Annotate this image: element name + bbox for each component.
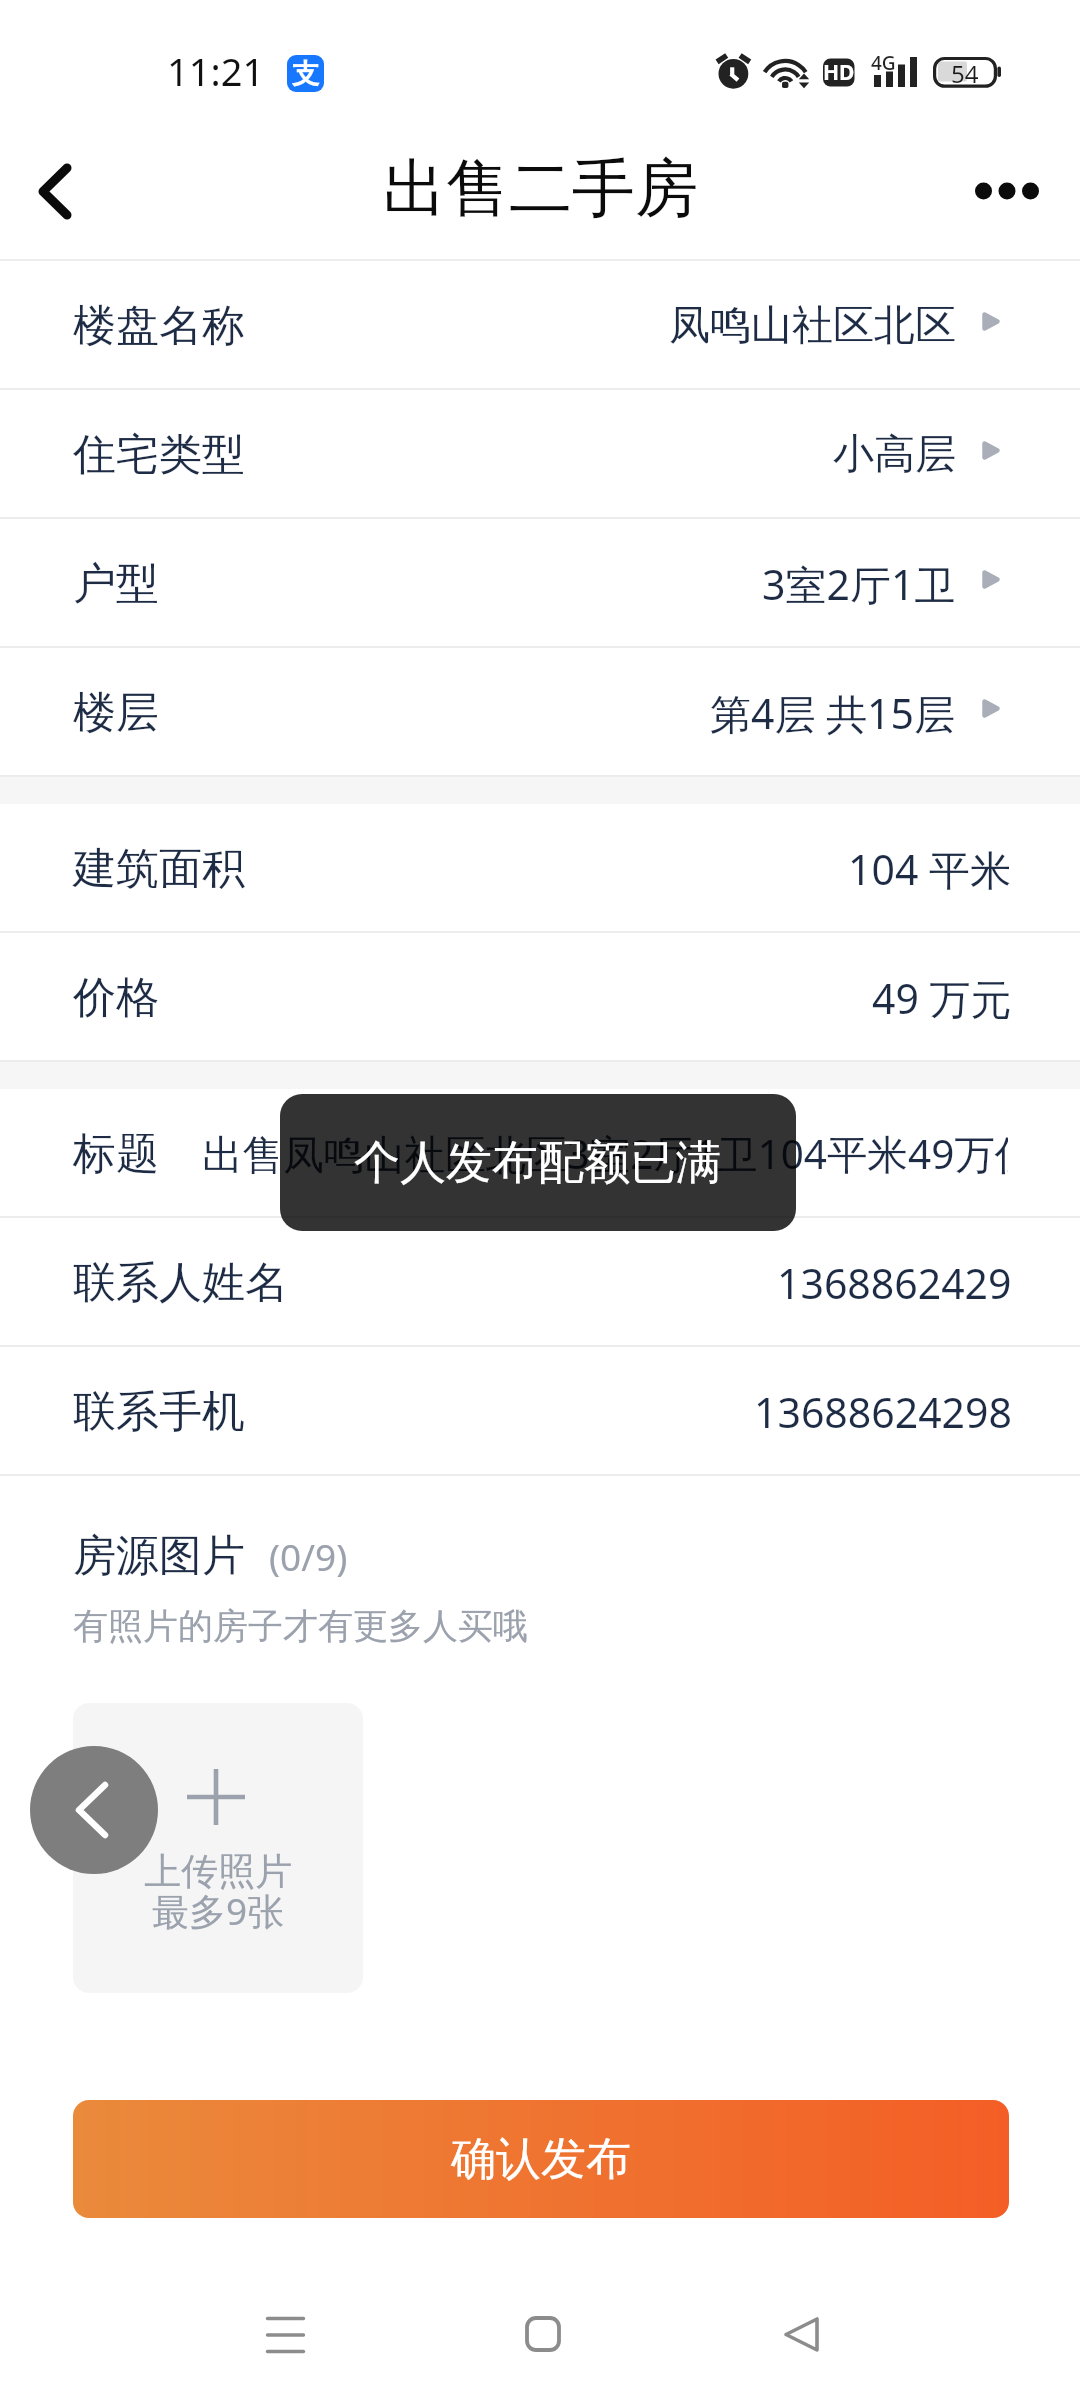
- button[interactable]: 楼盘名称: [0, 261, 1080, 390]
- staticText: 4G: [871, 50, 896, 76]
- staticText: 房源图片: [73, 1529, 245, 1583]
- button[interactable]: 价格: [0, 933, 1080, 1062]
- staticText: 出售二手房: [383, 149, 698, 228]
- button[interactable]: More options: [952, 131, 1062, 251]
- staticText: 49 万元: [872, 970, 1012, 1026]
- staticText: 户型: [73, 557, 159, 611]
- staticText: 建筑面积: [73, 842, 245, 896]
- staticText: 住宅类型: [73, 428, 245, 482]
- staticText: 确认发布: [451, 2131, 631, 2188]
- button[interactable]: 建筑面积: [0, 804, 1080, 933]
- button[interactable]: Back: [30, 1746, 158, 1874]
- button[interactable]: 户型: [0, 519, 1080, 648]
- staticText: 支: [292, 57, 319, 91]
- staticText: (0/9): [269, 1531, 348, 1581]
- staticText: 有照片的房子才有更多人买哦: [73, 1604, 528, 1648]
- staticText: 13688624298: [754, 1384, 1012, 1440]
- staticText: 3室2厅1卫: [762, 556, 956, 612]
- button[interactable]: Back: [751, 2284, 851, 2384]
- button[interactable]: 上传照片: [73, 1703, 363, 1993]
- staticText: 楼盘名称: [73, 299, 245, 353]
- staticText: 楼层: [73, 686, 159, 740]
- button[interactable]: Back: [0, 131, 110, 251]
- staticText: 个人发布配额已满: [354, 1134, 722, 1192]
- button[interactable]: Home: [493, 2284, 593, 2384]
- button[interactable]: 楼层: [0, 648, 1080, 777]
- button[interactable]: Recents: [235, 2285, 335, 2385]
- button[interactable]: 住宅类型: [0, 390, 1080, 519]
- staticText: 联系手机: [73, 1385, 245, 1439]
- staticText: 上传照片: [144, 1848, 292, 1895]
- staticText: 54: [951, 57, 979, 86]
- staticText: 出售凤鸣山社区北区3室2厅1卫104平米49万住宅: [202, 1126, 1008, 1181]
- staticText: 凤鸣山社区北区: [669, 300, 956, 352]
- staticText: 11:21: [167, 45, 265, 97]
- staticText: 第4层 共15层: [710, 685, 956, 741]
- staticText: 联系人姓名: [73, 1256, 288, 1310]
- button[interactable]: 标题: [0, 1089, 1080, 1218]
- staticText: HD: [823, 58, 855, 87]
- staticText: 价格: [73, 971, 159, 1025]
- button[interactable]: 确认发布: [73, 2100, 1009, 2218]
- staticText: 104 平米: [848, 841, 1012, 897]
- staticText: 最多9张: [152, 1885, 285, 1936]
- button[interactable]: 联系人姓名: [0, 1218, 1080, 1347]
- staticText: 小高层: [833, 429, 956, 481]
- button[interactable]: 联系手机: [0, 1347, 1080, 1476]
- staticText: 标题: [73, 1127, 159, 1181]
- staticText: 1368862429: [777, 1255, 1012, 1311]
